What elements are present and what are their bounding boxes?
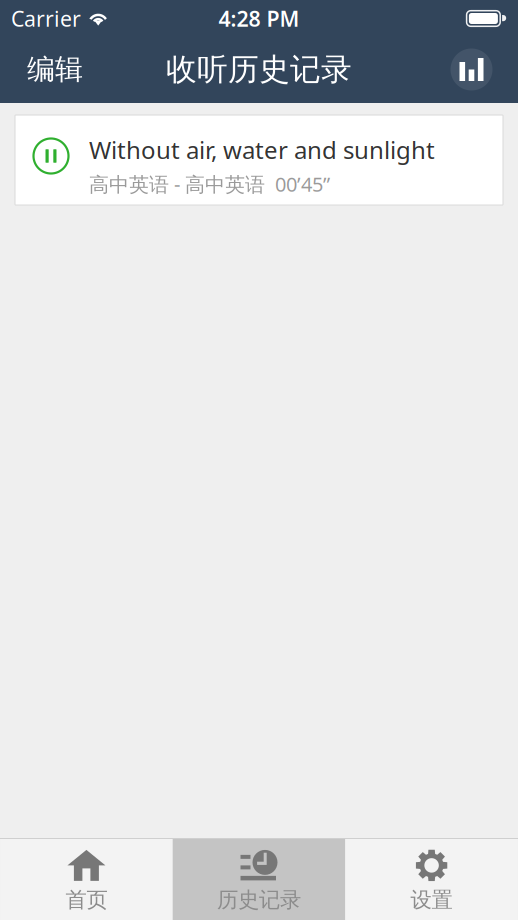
staticText: 编辑 <box>27 52 83 87</box>
button[interactable]: 编辑 <box>0 36 110 102</box>
staticText: 高中英语 - 高中英语 00’45” <box>89 171 330 197</box>
button[interactable]: 首页 <box>0 839 173 920</box>
button[interactable]: 历史记录 <box>173 839 345 920</box>
staticText: 4:28 PM <box>218 4 299 33</box>
staticText: 设置 <box>411 887 453 913</box>
staticText: 首页 <box>65 887 107 913</box>
button[interactable]: Without air, water and sunlight <box>15 115 503 205</box>
staticText: 收听历史记录 <box>166 51 352 88</box>
staticText: Without air, water and sunlight <box>89 134 435 166</box>
staticText: Carrier <box>11 4 81 33</box>
button[interactable]: 设置 <box>345 839 518 920</box>
button[interactable]: 学习统计 <box>448 36 518 102</box>
staticText: 历史记录 <box>217 887 301 913</box>
